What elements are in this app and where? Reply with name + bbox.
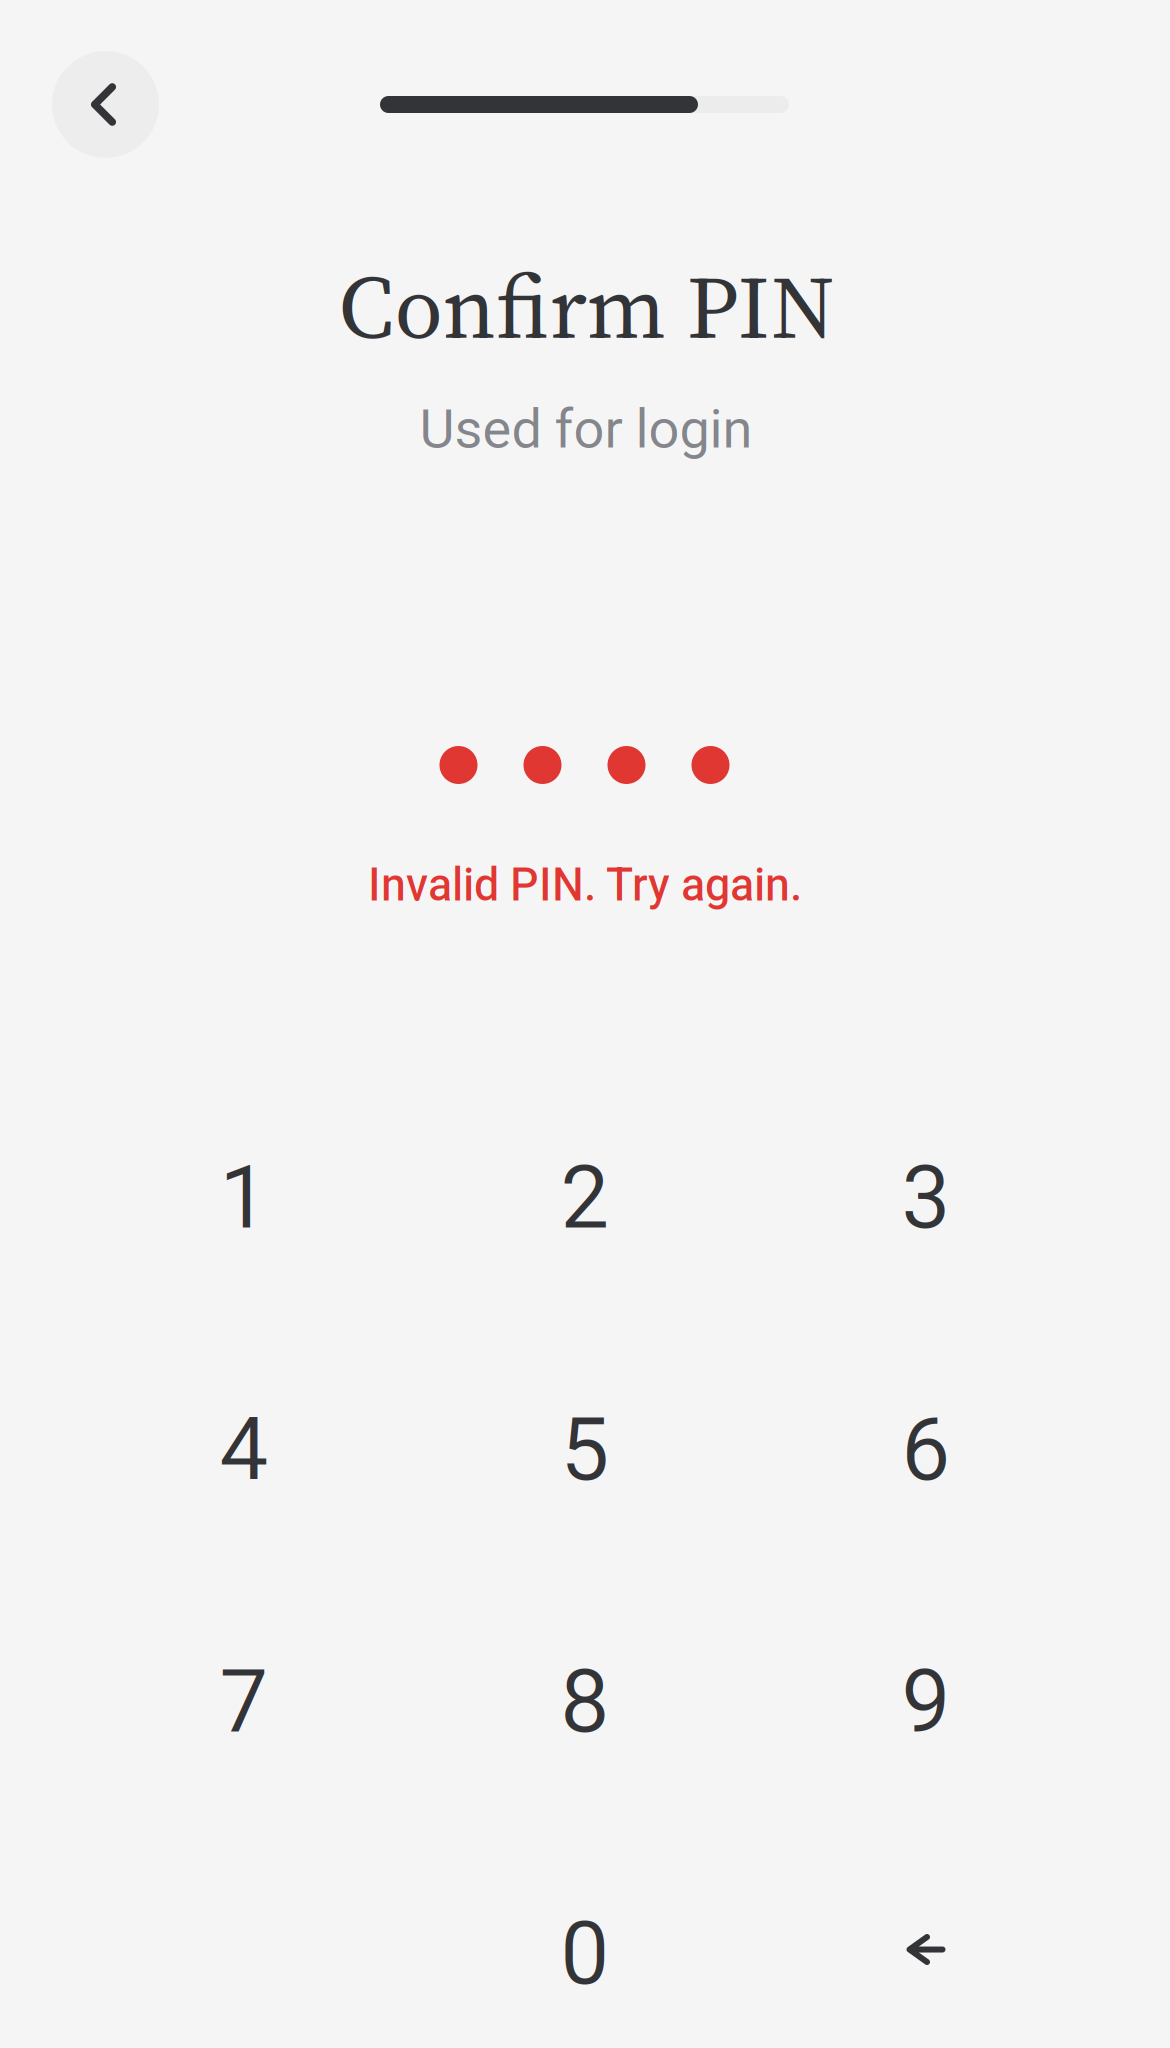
button[interactable]: Back: [52, 51, 159, 158]
staticText: 3: [901, 1147, 950, 1249]
button[interactable]: 4: [73, 1324, 414, 1576]
button[interactable]: Delete: [755, 1823, 1096, 2048]
staticText: 2: [560, 1147, 609, 1249]
staticText: 9: [901, 1651, 950, 1753]
staticText: Invalid PIN. Try again.: [368, 858, 802, 911]
button[interactable]: 1: [73, 1072, 414, 1324]
button[interactable]: 3: [755, 1072, 1096, 1324]
button[interactable]: 8: [414, 1576, 755, 1828]
staticText: Used for login: [419, 397, 752, 461]
staticText: 1: [219, 1147, 268, 1249]
staticText: 6: [901, 1399, 950, 1501]
button[interactable]: 7: [73, 1576, 414, 1828]
staticText: 5: [560, 1399, 609, 1501]
button[interactable]: 5: [414, 1324, 755, 1576]
staticText: 7: [219, 1651, 268, 1753]
staticText: 4: [219, 1399, 268, 1501]
button[interactable]: 2: [414, 1072, 755, 1324]
staticText: 0: [560, 1903, 609, 2005]
staticText: 8: [560, 1651, 609, 1753]
button[interactable]: 0: [414, 1828, 755, 2048]
staticText: Confirm PIN: [338, 245, 835, 367]
button[interactable]: 9: [755, 1576, 1096, 1828]
button[interactable]: 6: [755, 1324, 1096, 1576]
